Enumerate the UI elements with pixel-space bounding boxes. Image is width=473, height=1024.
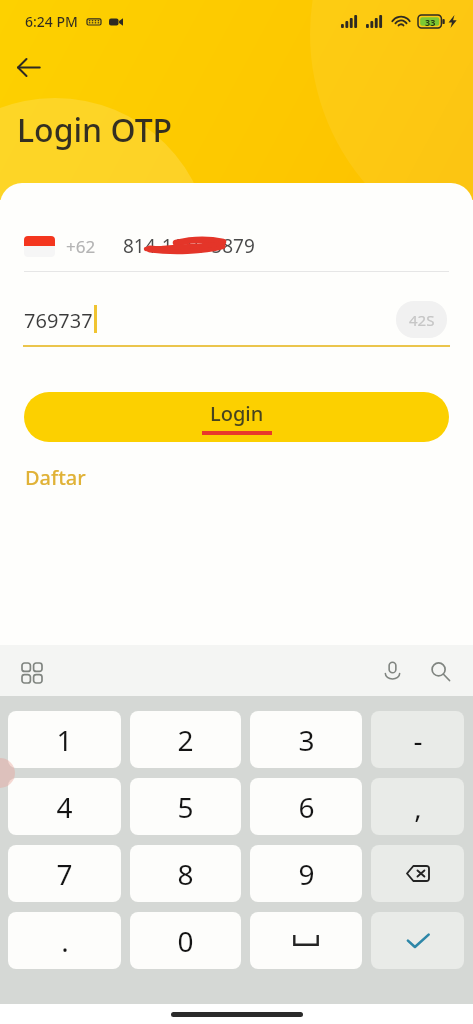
staticText: , xyxy=(414,788,422,826)
staticText: 8 xyxy=(177,855,194,893)
staticText: 6 xyxy=(298,788,315,826)
staticText: 6:24 PM xyxy=(25,12,78,31)
button[interactable]: . xyxy=(8,912,121,969)
staticText: Daftar xyxy=(25,464,86,491)
staticText: 4 xyxy=(56,788,73,826)
button[interactable]: - xyxy=(371,711,464,768)
button[interactable]: 1 xyxy=(8,711,121,768)
staticText: 2 xyxy=(177,721,194,759)
button[interactable]: 4 xyxy=(8,778,121,835)
staticText: 3 xyxy=(298,721,315,759)
staticText: 42S xyxy=(409,310,435,330)
button[interactable]: Back xyxy=(8,47,48,87)
staticText: - xyxy=(413,721,423,759)
button[interactable]: , xyxy=(371,778,464,835)
staticText: 814-1110-5879 xyxy=(123,233,255,259)
staticText: Login OTP xyxy=(17,108,173,152)
button[interactable]: Space xyxy=(250,912,362,969)
button[interactable]: Voice input xyxy=(373,652,411,690)
staticText: Login xyxy=(210,400,264,427)
button[interactable]: 42S xyxy=(396,301,447,338)
button[interactable]: 2 xyxy=(130,711,241,768)
staticText: 1 xyxy=(56,721,73,759)
button[interactable]: 7 xyxy=(8,845,121,902)
staticText: 769737 xyxy=(24,307,93,334)
button[interactable]: Daftar xyxy=(25,464,86,491)
button[interactable]: Search xyxy=(421,652,459,690)
staticText: 33 xyxy=(425,16,436,28)
button[interactable]: 0 xyxy=(130,912,241,969)
staticText: +62 xyxy=(66,235,96,258)
staticText: 0 xyxy=(177,922,194,960)
button[interactable]: 9 xyxy=(250,845,362,902)
button[interactable]: Login xyxy=(24,392,449,442)
button[interactable]: Backspace xyxy=(371,845,464,902)
staticText: 9 xyxy=(298,855,315,893)
staticText: 7 xyxy=(56,855,73,893)
button[interactable]: 6 xyxy=(250,778,362,835)
button[interactable]: Enter xyxy=(371,912,464,969)
staticText: . xyxy=(61,922,69,960)
button[interactable]: 5 xyxy=(130,778,241,835)
button[interactable]: 8 xyxy=(130,845,241,902)
staticText: 5 xyxy=(177,788,194,826)
button[interactable]: Keyboard layouts xyxy=(12,653,52,693)
button[interactable]: 3 xyxy=(250,711,362,768)
